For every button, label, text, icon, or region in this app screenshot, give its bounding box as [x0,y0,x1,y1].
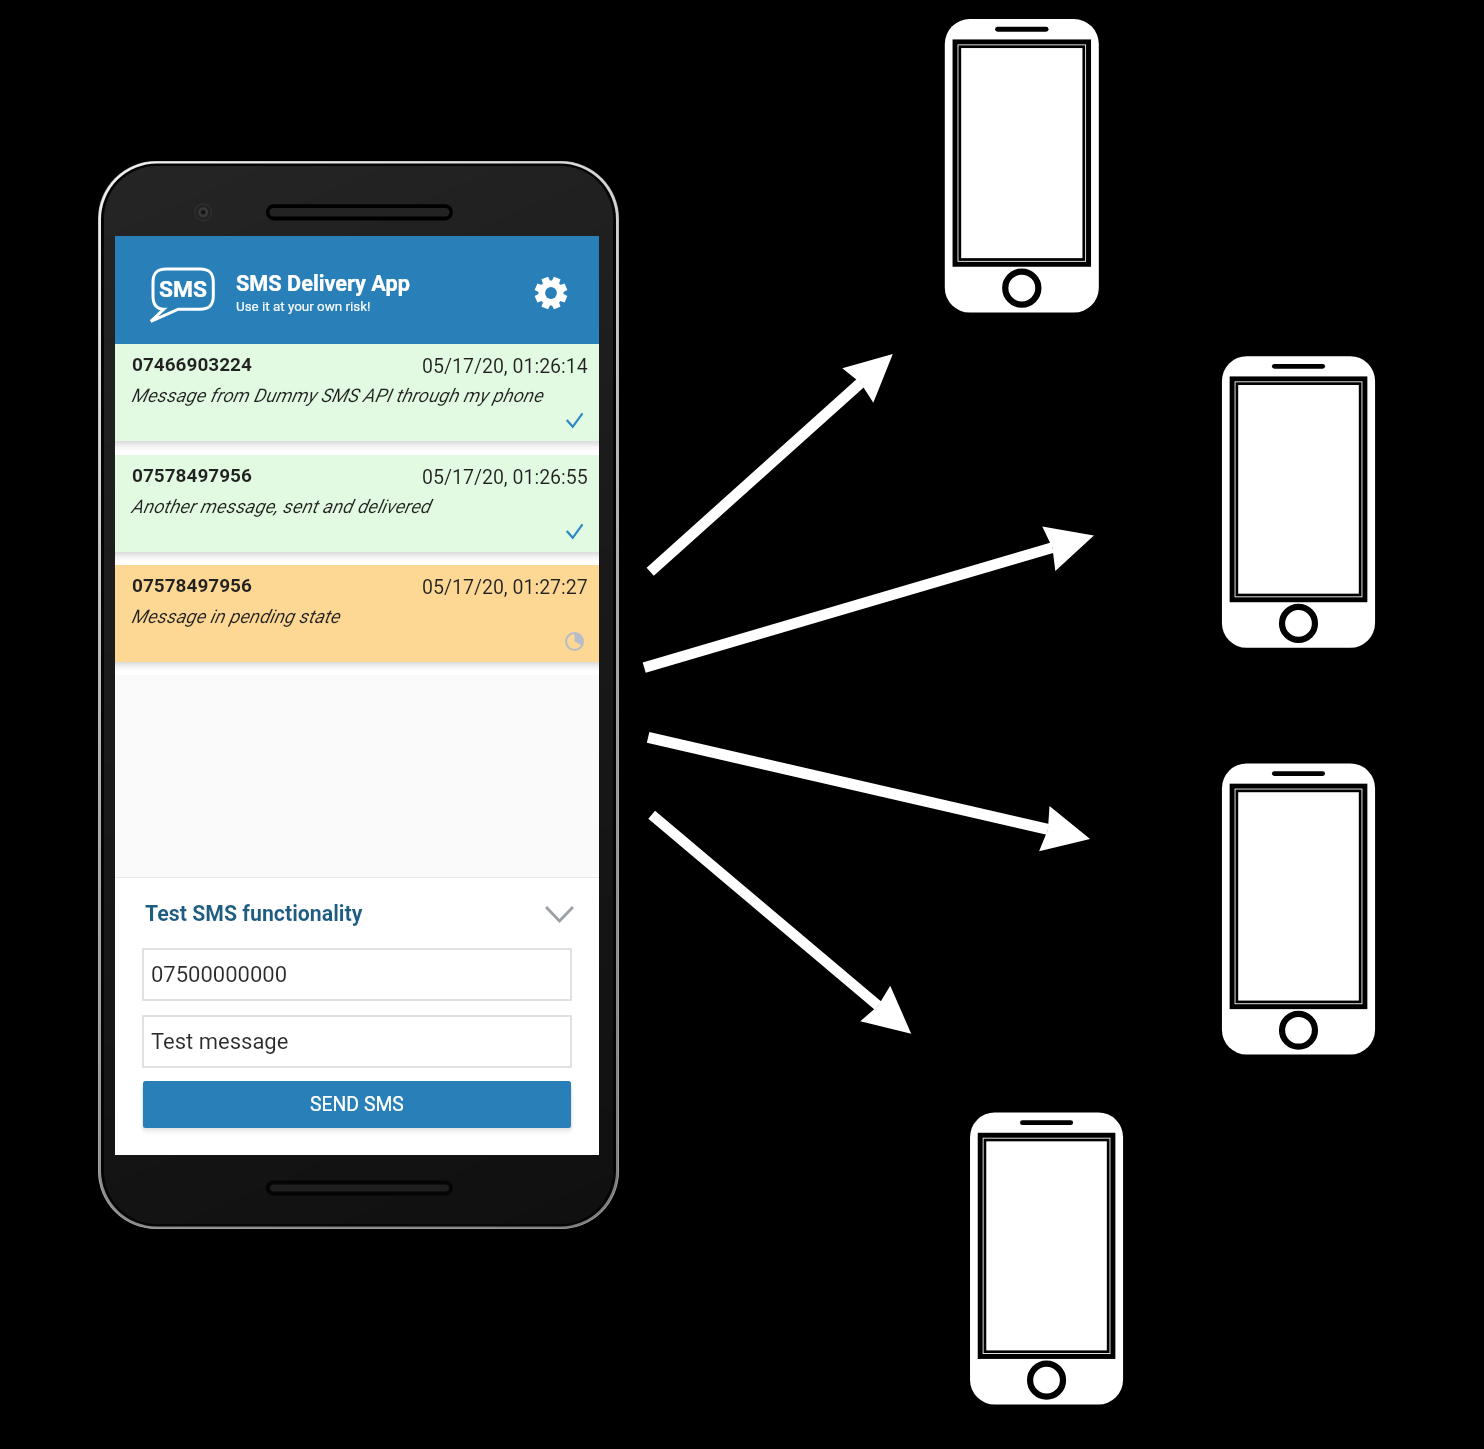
staticText: Test message [151,1029,289,1055]
staticText: SEND SMS [310,1093,404,1116]
button[interactable]: 07578497956 [115,455,599,552]
staticText: 07578497956 [132,574,252,596]
staticText: 07500000000 [151,962,288,988]
staticText: Use it at your own risk! [236,299,371,315]
staticText: SMS [159,276,207,303]
staticText: SMS Delivery App [236,271,410,296]
button[interactable]: SEND SMS [143,1081,571,1128]
staticText: Another message, sent and delivered [131,496,431,518]
staticText: 07578497956 [132,464,252,486]
button[interactable]: Test SMS functionality [115,878,599,949]
button[interactable]: 07500000000 [143,949,571,1000]
staticText: 07466903224 [132,353,252,375]
staticText: 05/17/20, 01:26:55 [422,466,588,489]
button[interactable]: 07466903224 [115,344,599,441]
staticText: Message from Dummy SMS API through my ph… [131,385,543,407]
button[interactable]: Test message [143,1016,571,1067]
button[interactable]: Settings [518,260,584,326]
staticText: Message in pending state [131,606,340,628]
staticText: 05/17/20, 01:27:27 [422,576,588,599]
button[interactable]: 07578497956 [115,565,599,662]
staticText: 05/17/20, 01:26:14 [422,355,588,378]
staticText: Test SMS functionality [145,901,363,926]
